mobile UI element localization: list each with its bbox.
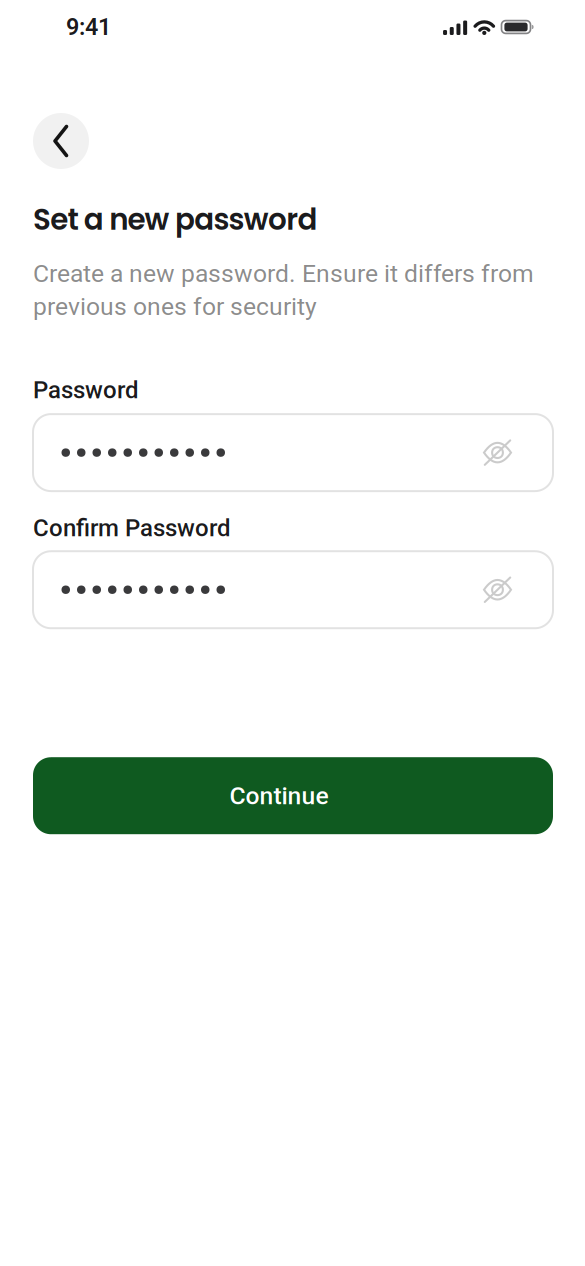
button[interactable]: Back <box>33 113 89 169</box>
button[interactable]: Show password <box>483 440 513 466</box>
staticText: 9:41 <box>66 13 111 41</box>
button[interactable]: Continue <box>33 757 553 834</box>
staticText: Confirm Password <box>33 514 231 542</box>
staticText: Create a new password. Ensure it differs… <box>33 259 534 321</box>
staticText: Password <box>33 376 139 404</box>
button[interactable]: Show password <box>483 577 513 603</box>
staticText: Set a new password <box>33 199 317 240</box>
staticText: Continue <box>229 781 328 810</box>
